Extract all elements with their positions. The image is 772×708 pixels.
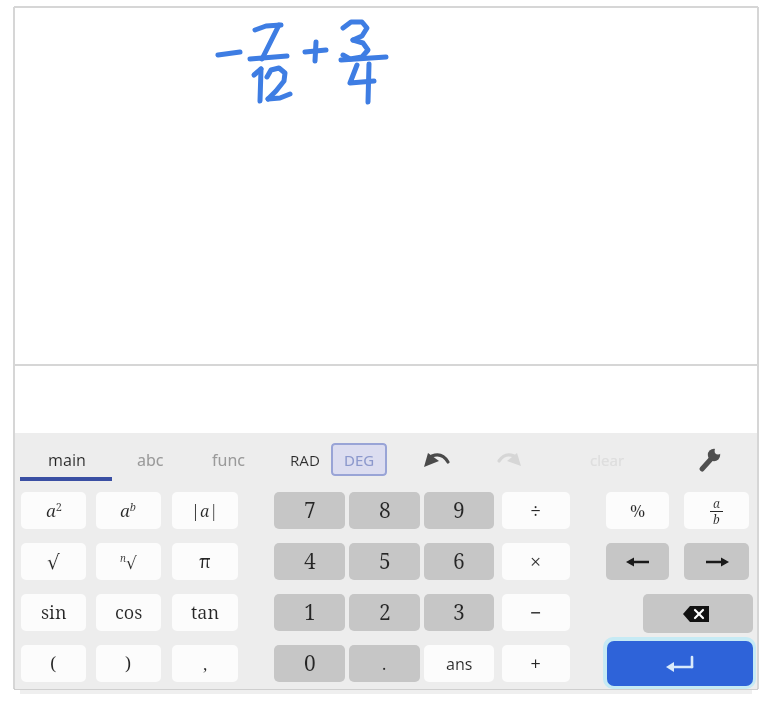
button[interactable]	[694, 442, 728, 476]
staticText: clear	[590, 450, 625, 470]
staticText: ,	[203, 652, 208, 675]
staticText: b	[713, 511, 720, 527]
button[interactable]	[420, 444, 454, 476]
button[interactable]: abc	[116, 444, 184, 476]
button[interactable]	[643, 594, 753, 633]
staticText: 3	[453, 598, 465, 627]
button[interactable]: 3	[424, 594, 494, 631]
button[interactable]: π	[172, 543, 238, 580]
staticText: ans	[446, 653, 473, 675]
staticText: n√	[120, 551, 137, 573]
staticText: |a|	[191, 500, 219, 522]
staticText: a2	[46, 499, 62, 522]
button[interactable]: 8	[349, 492, 420, 529]
staticText: abc	[137, 449, 164, 471]
staticText: func	[212, 449, 245, 471]
staticText: ×	[530, 548, 542, 575]
button[interactable]: func	[192, 444, 264, 476]
staticText: )	[125, 651, 132, 676]
staticText: √	[47, 550, 60, 573]
button[interactable]	[684, 543, 749, 580]
button[interactable]: ÷	[502, 492, 570, 529]
staticText: RAD	[290, 450, 320, 470]
staticText: −	[530, 599, 542, 626]
button[interactable]: −	[502, 594, 570, 631]
button[interactable]: .	[349, 645, 420, 682]
button[interactable]: 2	[349, 594, 420, 631]
button[interactable]: ,	[172, 645, 238, 682]
button[interactable]: cos	[96, 594, 161, 631]
button[interactable]: 5	[349, 543, 420, 580]
staticText: 7	[304, 496, 316, 525]
button[interactable]: (	[21, 645, 86, 682]
staticText: 8	[379, 496, 391, 525]
button[interactable]: 6	[424, 543, 494, 580]
button[interactable]	[494, 444, 528, 476]
staticText: %	[630, 499, 646, 522]
button[interactable]: tan	[172, 594, 238, 631]
button[interactable]: clear	[575, 446, 639, 474]
button[interactable]: |a|	[172, 492, 238, 529]
button[interactable]: 7	[274, 492, 345, 529]
button[interactable]: 4	[274, 543, 345, 580]
staticText: π	[199, 549, 211, 574]
button[interactable]: 9	[424, 492, 494, 529]
button[interactable]: √	[21, 543, 86, 580]
staticText: tan	[191, 600, 220, 625]
button[interactable]: %	[606, 492, 669, 529]
button[interactable]	[607, 641, 753, 686]
staticText: 6	[453, 547, 465, 576]
button[interactable]: main	[28, 444, 106, 476]
button[interactable]: RAD	[278, 444, 332, 476]
staticText: 5	[379, 547, 391, 576]
staticText: DEG	[344, 450, 375, 470]
staticText: 1	[304, 598, 316, 627]
button[interactable]: ×	[502, 543, 570, 580]
button[interactable]	[606, 543, 669, 580]
staticText: +	[530, 650, 542, 677]
staticText: a	[713, 495, 720, 511]
button[interactable]: 1	[274, 594, 345, 631]
button[interactable]: n√	[96, 543, 161, 580]
staticText: 9	[453, 496, 465, 525]
staticText: ÷	[530, 497, 542, 524]
button[interactable]: ans	[424, 645, 494, 682]
button[interactable]: 0	[274, 645, 345, 682]
staticText: main	[48, 449, 86, 471]
button[interactable]: sin	[21, 594, 86, 631]
staticText: 0	[304, 649, 316, 678]
button[interactable]: )	[96, 645, 161, 682]
staticText: cos	[115, 600, 143, 625]
button[interactable]: DEG	[331, 443, 387, 476]
staticText: 4	[304, 547, 316, 576]
staticText: .	[382, 652, 387, 675]
staticText: (	[50, 651, 57, 676]
staticText: 2	[379, 598, 391, 627]
button[interactable]: a	[684, 492, 749, 529]
button[interactable]: +	[502, 645, 570, 682]
staticText: sin	[41, 600, 67, 625]
button[interactable]: a2	[21, 492, 86, 529]
button[interactable]: ab	[96, 492, 161, 529]
staticText: ab	[120, 499, 137, 522]
